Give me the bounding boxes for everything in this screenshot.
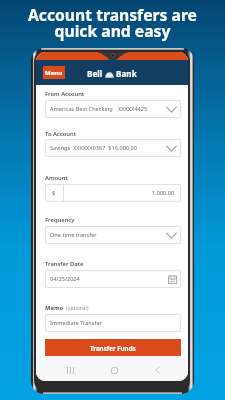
button[interactable]: Home	[104, 360, 124, 380]
staticText: Transfer Date	[45, 260, 84, 268]
staticText: Americas Best Checking	[50, 105, 113, 113]
staticText: Immediate Transfer	[50, 319, 102, 327]
staticText: Memo	[45, 304, 64, 312]
staticText: Transfer Funds	[90, 344, 136, 352]
staticText: Account transfers are quick and easy	[28, 4, 197, 41]
staticText: 1,000.00	[152, 189, 175, 197]
staticText: To Account	[45, 130, 77, 138]
staticText: Amount	[45, 174, 68, 182]
button[interactable]: One time transfer	[45, 226, 181, 244]
button[interactable]: Transfer Funds	[45, 339, 181, 356]
staticText: One time transfer	[50, 231, 97, 239]
button[interactable]: Immediate Transfer	[45, 314, 181, 332]
button[interactable]: Recent apps	[60, 360, 80, 380]
staticText: $	[52, 189, 56, 197]
button[interactable]: Menu	[43, 66, 65, 79]
staticText: (optional)	[66, 305, 89, 312]
staticText: Menu	[45, 69, 63, 77]
staticText: Bell	[87, 68, 103, 79]
staticText: 04/25/2024	[50, 275, 80, 283]
staticText: From Account	[45, 90, 85, 98]
button[interactable]: Americas Best Checking	[45, 100, 181, 118]
button[interactable]: 04/25/2024	[45, 270, 181, 288]
staticText: Frequency	[45, 216, 75, 224]
staticText: Savings XXXXXX0367 $10,000.00	[50, 144, 137, 152]
button[interactable]: Back	[147, 360, 167, 380]
button[interactable]: $	[45, 184, 181, 202]
staticText: XXXXX4425	[118, 105, 148, 113]
staticText: Bank	[116, 68, 137, 79]
button[interactable]: Savings XXXXXX0367 $10,000.00	[45, 139, 181, 157]
